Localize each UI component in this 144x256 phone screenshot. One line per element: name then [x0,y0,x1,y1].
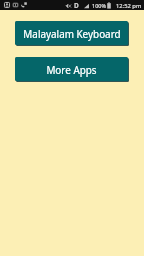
staticText: Malayalam Keyboard [23,27,121,40]
button[interactable]: More Apps [15,57,128,81]
staticText: 12:52 pm [116,2,142,10]
staticText: 100% [92,2,107,9]
staticText: D [74,1,79,10]
staticText: More Apps [46,63,97,76]
button[interactable]: Malayalam Keyboard [15,21,128,45]
